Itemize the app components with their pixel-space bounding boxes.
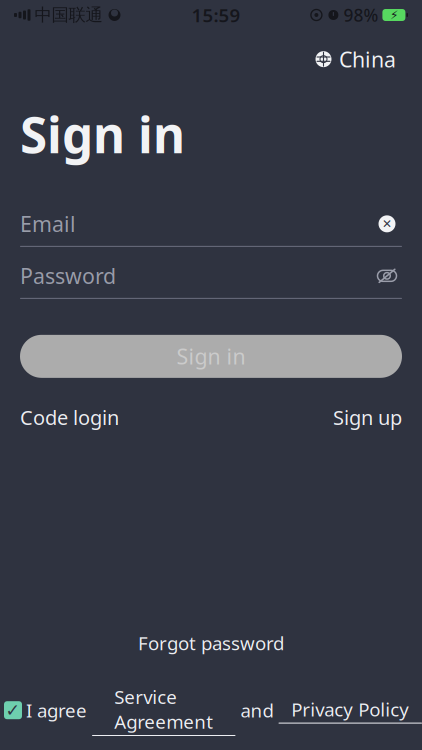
staticText: 98% xyxy=(343,3,378,26)
button[interactable]: Show password xyxy=(372,261,402,291)
staticText: Email xyxy=(20,210,76,238)
staticText: 中国联通 xyxy=(34,4,102,26)
staticText: Sign in xyxy=(176,342,245,370)
staticText: Code login xyxy=(20,404,119,430)
staticText: ✕ xyxy=(382,217,392,231)
staticText: Sign up xyxy=(333,404,402,430)
staticText: ⚡︎ xyxy=(390,8,398,22)
staticText: I agree xyxy=(26,698,92,723)
staticText: Service Agreement xyxy=(114,684,213,734)
button[interactable]: Privacy Policy xyxy=(278,697,422,724)
button[interactable]: Clear email xyxy=(372,209,402,239)
button[interactable]: Sign up xyxy=(333,398,402,436)
button[interactable]: China xyxy=(311,39,400,79)
staticText: Privacy Policy xyxy=(291,697,409,722)
button[interactable]: Sign in xyxy=(20,335,402,378)
staticText: 15:59 xyxy=(191,3,240,27)
staticText: Forgot password xyxy=(138,631,284,655)
button[interactable]: I agree xyxy=(0,697,26,723)
button[interactable]: Service Agreement xyxy=(92,684,235,736)
button[interactable]: Forgot password xyxy=(128,626,294,660)
staticText: and xyxy=(235,698,278,723)
button[interactable]: Code login xyxy=(20,398,119,436)
staticText: ✓ xyxy=(5,700,20,720)
staticText: China xyxy=(339,45,396,73)
staticText: Password xyxy=(20,262,116,290)
staticText: Sign in xyxy=(20,101,185,167)
